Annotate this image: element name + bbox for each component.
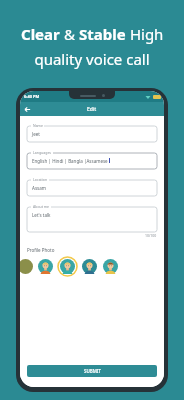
staticText: Let's talk — [32, 212, 51, 218]
staticText: Location — [33, 177, 48, 182]
button[interactable]: Profile photo option — [20, 259, 33, 274]
staticText: Stable — [79, 24, 126, 44]
button[interactable]: Profile photo option 3 — [81, 258, 98, 275]
staticText: Clear — [21, 24, 60, 44]
staticText: Jeet — [32, 131, 40, 137]
staticText: Edit — [87, 106, 97, 113]
button[interactable]: Profile photo option 1 — [37, 258, 54, 275]
button[interactable]: About me — [27, 207, 157, 232]
button[interactable]: SUBMIT — [27, 365, 157, 377]
staticText: 6:40 PM — [24, 94, 40, 99]
staticText: High — [126, 24, 164, 44]
staticText: SUBMIT — [84, 368, 101, 374]
button[interactable]: Profile photo option 4 — [102, 258, 119, 275]
button[interactable]: Languages — [27, 153, 157, 169]
staticText: & — [60, 24, 79, 44]
staticText: English | Hindi | Bangla |Assamese — [32, 158, 108, 164]
staticText: quality voice call — [34, 49, 150, 69]
staticText: About me — [33, 204, 50, 209]
button[interactable]: Back — [21, 103, 34, 116]
staticText: Name — [33, 123, 43, 128]
staticText: Profile Photo — [27, 247, 55, 253]
button[interactable]: Location — [27, 180, 157, 196]
button[interactable]: Name — [27, 126, 157, 142]
staticText: 10/100 — [145, 233, 157, 238]
button[interactable]: Profile photo option 2 — [58, 257, 77, 276]
staticText: Languages — [33, 150, 52, 155]
staticText: Assam — [32, 185, 46, 191]
